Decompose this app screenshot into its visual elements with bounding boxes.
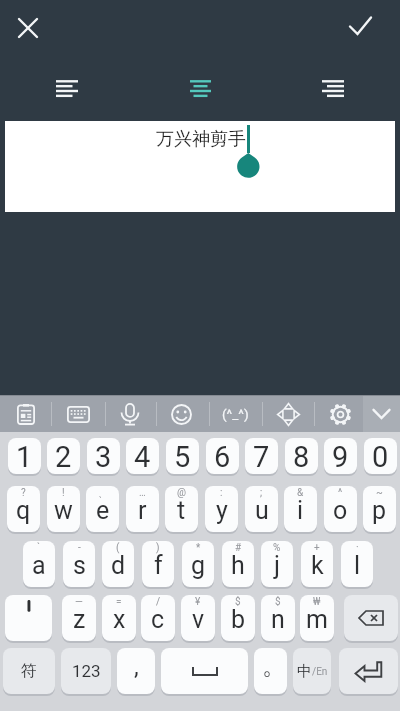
staticText: : bbox=[220, 487, 223, 499]
button[interactable]: & bbox=[284, 486, 317, 532]
button[interactable]: 7 bbox=[245, 438, 278, 474]
staticText: * bbox=[196, 542, 201, 554]
staticText: … bbox=[139, 487, 146, 499]
staticText: & bbox=[297, 487, 304, 499]
button[interactable]: ; bbox=[245, 486, 278, 532]
staticText: u bbox=[255, 496, 269, 525]
staticText: 6 bbox=[214, 440, 231, 474]
button[interactable] bbox=[344, 595, 398, 641]
staticText: ₩ bbox=[313, 596, 321, 608]
button[interactable] bbox=[161, 648, 248, 694]
button[interactable] bbox=[108, 396, 152, 432]
button[interactable] bbox=[56, 396, 100, 432]
button[interactable]: ₩ bbox=[300, 595, 334, 641]
button[interactable] bbox=[159, 396, 203, 432]
button[interactable] bbox=[316, 73, 350, 105]
button[interactable]: 中 bbox=[293, 648, 331, 694]
button[interactable]: $ bbox=[261, 595, 295, 641]
staticText: $ bbox=[275, 596, 281, 608]
button[interactable] bbox=[266, 396, 310, 432]
staticText: h bbox=[231, 551, 245, 580]
button[interactable]: $ bbox=[221, 595, 255, 641]
staticText: 5 bbox=[174, 440, 191, 474]
button[interactable]: : bbox=[205, 486, 238, 532]
button[interactable]: / bbox=[141, 595, 175, 641]
button[interactable]: 8 bbox=[285, 438, 318, 474]
staticText: 123 bbox=[72, 661, 101, 681]
button[interactable] bbox=[4, 396, 48, 432]
staticText: ? bbox=[21, 487, 26, 499]
button[interactable]: * bbox=[182, 541, 214, 587]
staticText: i bbox=[297, 496, 304, 525]
button[interactable]: + bbox=[301, 541, 333, 587]
staticText: b bbox=[231, 605, 246, 634]
staticText: n bbox=[271, 605, 285, 634]
staticText: — bbox=[75, 596, 83, 608]
button[interactable]: 。 bbox=[254, 648, 287, 694]
staticText: ~ bbox=[376, 487, 383, 499]
button[interactable]: — bbox=[62, 595, 96, 641]
staticText: t bbox=[177, 496, 186, 525]
button[interactable] bbox=[12, 12, 44, 44]
staticText: p bbox=[372, 496, 387, 525]
staticText: ( bbox=[116, 542, 120, 554]
button[interactable]: , bbox=[117, 648, 155, 694]
staticText: z bbox=[73, 605, 86, 634]
staticText: 9 bbox=[332, 440, 349, 474]
button[interactable]: 123 bbox=[61, 648, 111, 694]
button[interactable]: % bbox=[261, 541, 293, 587]
button[interactable]: 6 bbox=[206, 438, 239, 474]
staticText: - bbox=[78, 542, 81, 554]
button[interactable] bbox=[183, 73, 217, 105]
staticText: w bbox=[54, 496, 73, 525]
staticText: 7 bbox=[253, 440, 270, 474]
button[interactable]: 9 bbox=[324, 438, 357, 474]
button[interactable]: ` bbox=[23, 541, 55, 587]
button[interactable]: ! bbox=[47, 486, 80, 532]
staticText: ` bbox=[37, 542, 41, 554]
staticText: r bbox=[138, 496, 147, 525]
staticText: f bbox=[154, 551, 163, 580]
button[interactable]: @ bbox=[165, 486, 198, 532]
button[interactable] bbox=[5, 595, 52, 641]
button[interactable]: … bbox=[126, 486, 159, 532]
button[interactable] bbox=[5, 121, 395, 212]
staticText: c bbox=[151, 605, 165, 634]
button[interactable]: ¥ bbox=[181, 595, 215, 641]
staticText: · bbox=[356, 542, 359, 554]
button[interactable] bbox=[339, 648, 398, 694]
button[interactable] bbox=[318, 396, 362, 432]
button[interactable]: ) bbox=[142, 541, 174, 587]
staticText: q bbox=[16, 496, 31, 525]
button[interactable]: ~ bbox=[363, 486, 396, 532]
staticText: + bbox=[314, 542, 320, 554]
staticText: a bbox=[32, 551, 46, 580]
button[interactable]: # bbox=[222, 541, 254, 587]
button[interactable]: ^ bbox=[324, 486, 357, 532]
button[interactable]: ( bbox=[102, 541, 134, 587]
staticText: @ bbox=[177, 487, 186, 499]
button[interactable]: 、 bbox=[86, 486, 119, 532]
button[interactable]: 4 bbox=[126, 438, 159, 474]
button[interactable]: 符 bbox=[3, 648, 55, 694]
staticText: y bbox=[216, 496, 228, 525]
staticText: 、 bbox=[98, 487, 108, 500]
button[interactable]: 2 bbox=[47, 438, 80, 474]
button[interactable]: 1 bbox=[8, 438, 41, 474]
button[interactable]: ? bbox=[7, 486, 40, 532]
button[interactable]: - bbox=[63, 541, 95, 587]
staticText: l bbox=[354, 551, 361, 580]
staticText: $ bbox=[235, 596, 241, 608]
button[interactable] bbox=[345, 11, 377, 43]
button[interactable] bbox=[50, 73, 84, 105]
button[interactable]: 0 bbox=[364, 438, 397, 474]
button[interactable]: (^_^) bbox=[210, 396, 261, 432]
staticText: e bbox=[96, 496, 110, 525]
button[interactable] bbox=[363, 396, 400, 432]
button[interactable]: · bbox=[341, 541, 373, 587]
button[interactable]: = bbox=[102, 595, 136, 641]
button[interactable]: 5 bbox=[166, 438, 199, 474]
button[interactable]: 3 bbox=[87, 438, 120, 474]
staticText: o bbox=[333, 496, 348, 525]
staticText: , bbox=[134, 653, 139, 681]
